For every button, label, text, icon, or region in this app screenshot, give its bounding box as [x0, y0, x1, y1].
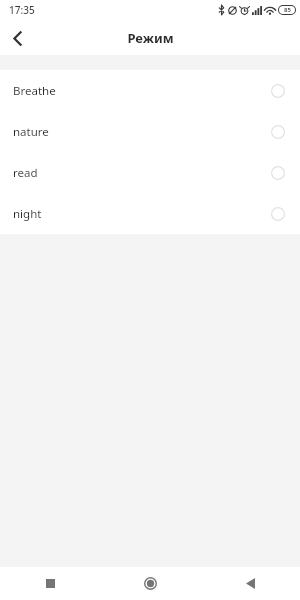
staticText: Режим [127, 29, 174, 47]
staticText: nature [13, 124, 271, 140]
button[interactable]: night [0, 193, 300, 234]
button[interactable]: Recents [0, 567, 100, 600]
button[interactable]: nature [0, 111, 300, 152]
button[interactable]: Back [200, 567, 300, 600]
staticText: night [13, 206, 271, 222]
button[interactable]: Breathe [0, 70, 300, 111]
staticText: Breathe [13, 83, 271, 99]
staticText: read [13, 165, 271, 181]
button[interactable]: read [0, 152, 300, 193]
button[interactable]: Home [100, 567, 200, 600]
button[interactable]: Back [0, 21, 34, 55]
staticText: 17:35 [9, 3, 35, 17]
staticText: 85 [284, 6, 291, 14]
